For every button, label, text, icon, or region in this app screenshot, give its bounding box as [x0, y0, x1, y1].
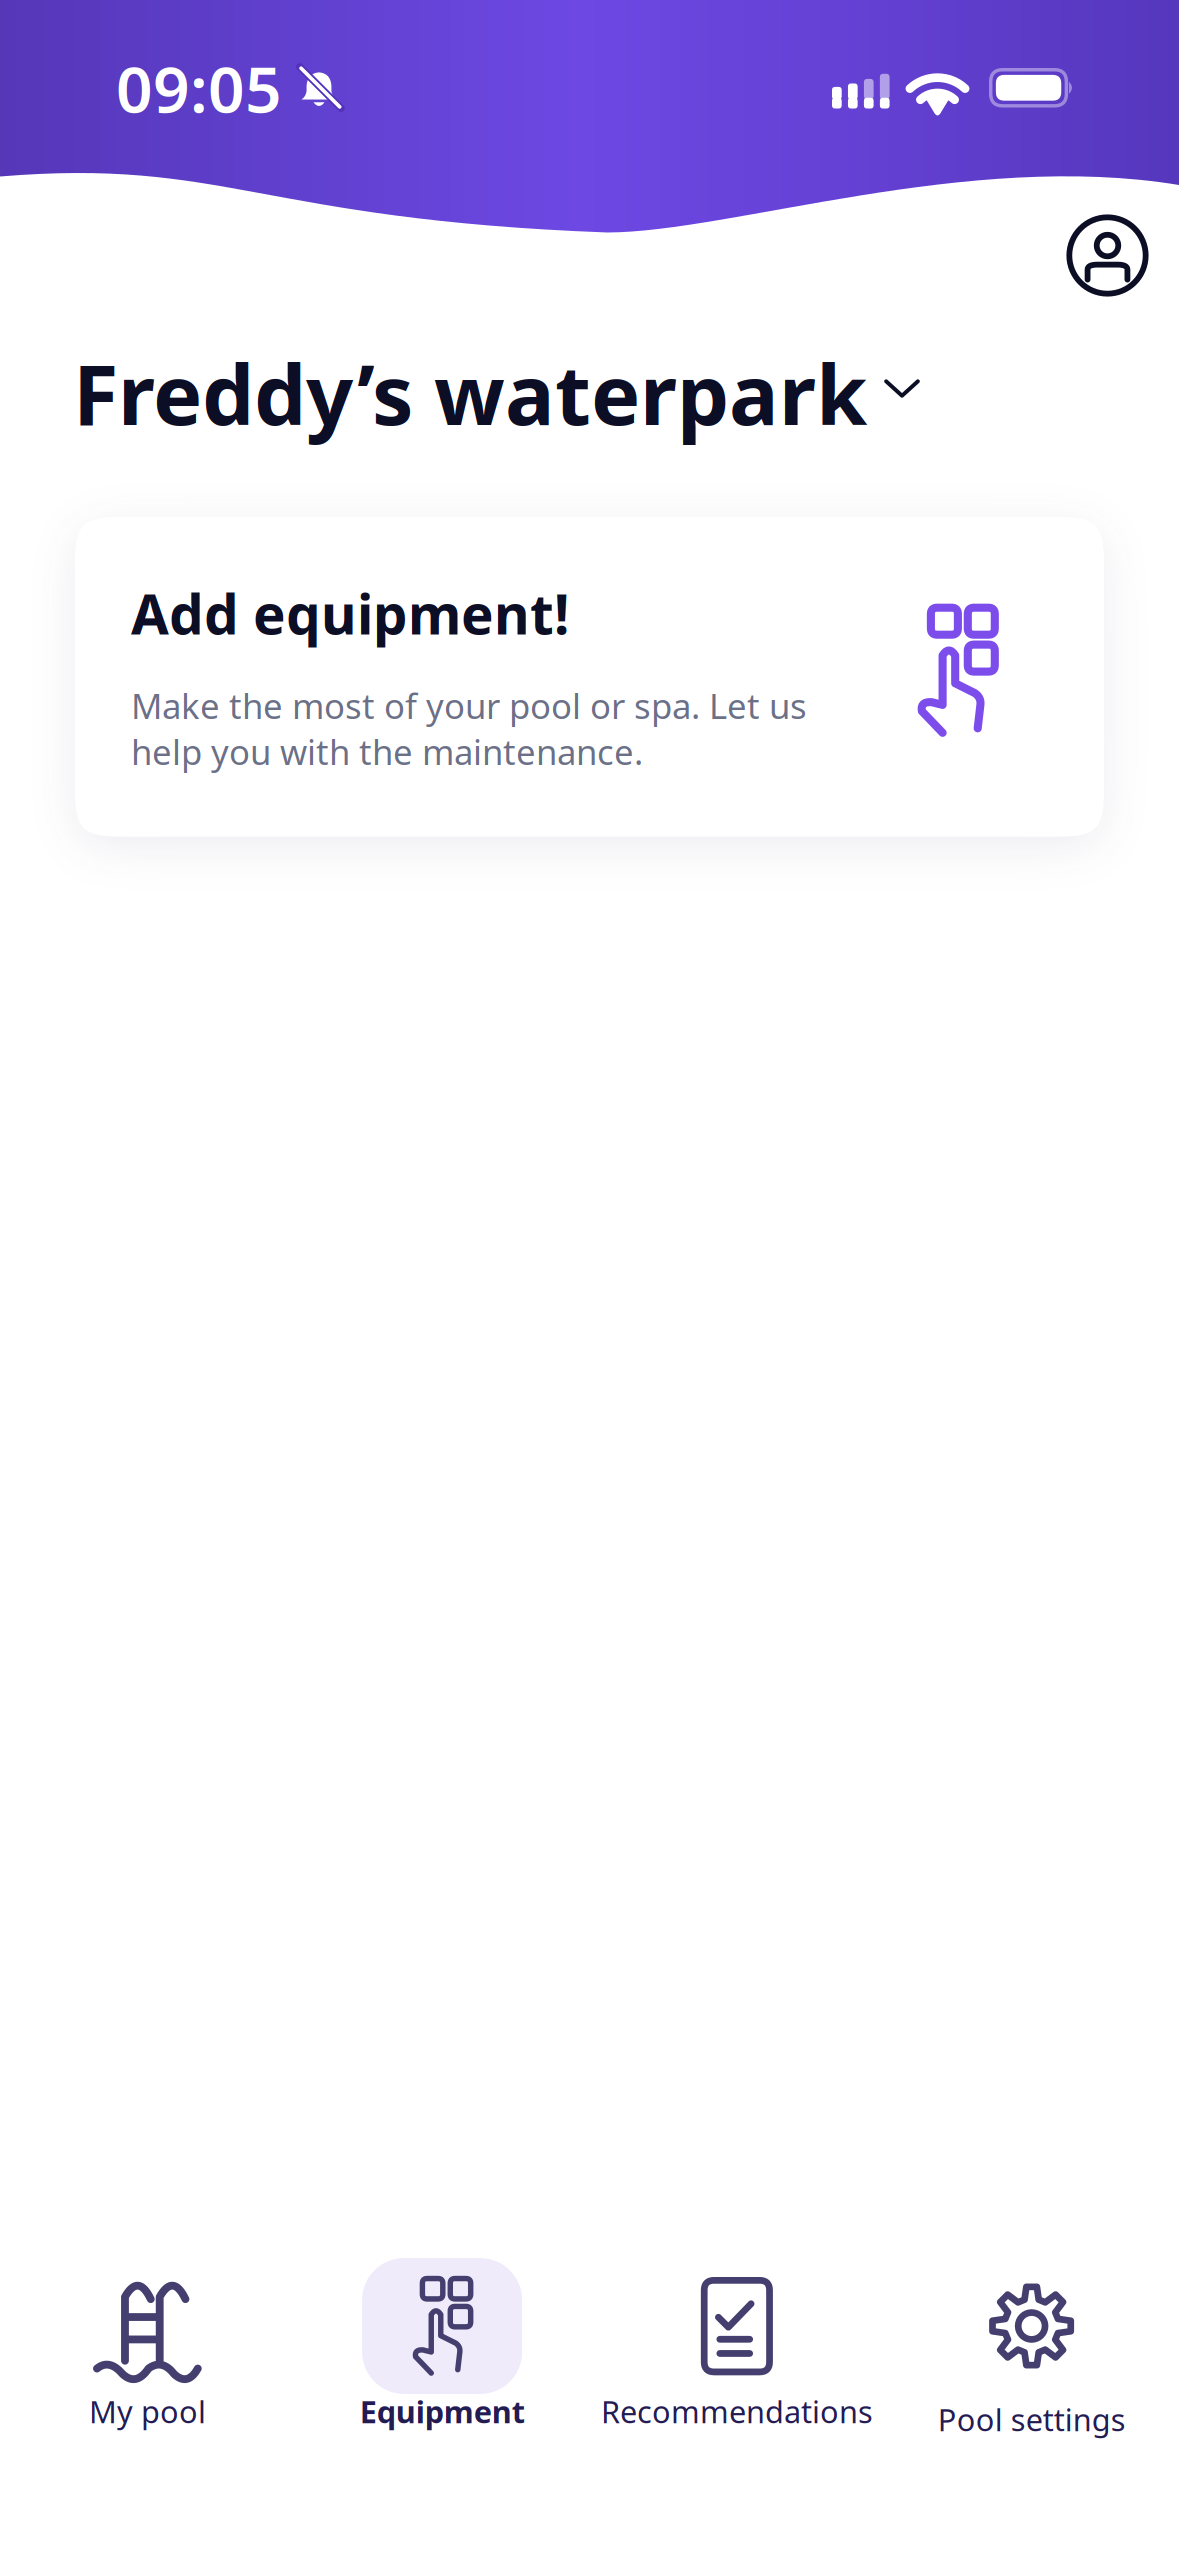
staticText: Freddy’s waterpark	[73, 338, 867, 448]
staticText: Recommendations	[601, 2391, 873, 2432]
button[interactable]: My pool	[0, 2258, 295, 2438]
staticText: Pool settings	[938, 2399, 1126, 2440]
staticText: Equipment	[360, 2391, 525, 2432]
button[interactable]: Add equipment!	[75, 517, 1104, 837]
button[interactable]: Pool settings	[884, 2258, 1179, 2438]
button[interactable]: Account	[1048, 196, 1167, 315]
button[interactable]: Freddy’s waterpark	[0, 326, 940, 460]
staticText: My pool	[89, 2391, 206, 2432]
button[interactable]: Equipment	[295, 2258, 590, 2438]
staticText: Add equipment!	[131, 577, 569, 650]
staticText: Make the most of your pool or spa. Let u…	[131, 683, 807, 775]
staticText: 09:05	[116, 45, 282, 130]
button[interactable]: Recommendations	[589, 2258, 884, 2438]
